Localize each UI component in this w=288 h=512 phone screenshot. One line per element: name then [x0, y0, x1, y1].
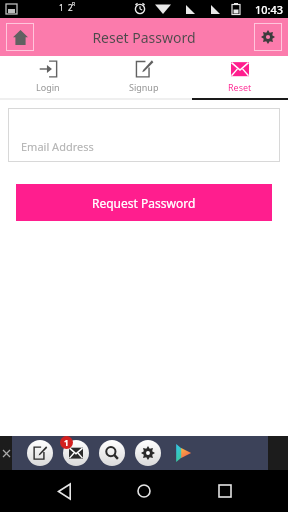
button[interactable]: Mail: [63, 440, 89, 466]
button[interactable]: Settings: [135, 440, 161, 466]
button[interactable]: Compose: [27, 440, 53, 466]
button[interactable]: Signup: [96, 56, 192, 98]
staticText: Signup: [129, 81, 159, 93]
button[interactable]: Home: [6, 23, 34, 51]
staticText: Reset Password: [92, 28, 196, 47]
staticText: 1: [59, 2, 64, 13]
button[interactable]: Request Password: [16, 184, 272, 221]
button[interactable]: Reset: [192, 56, 288, 98]
button[interactable]: Email Address: [8, 108, 280, 162]
staticText: 1: [64, 437, 69, 448]
button[interactable]: Home: [127, 474, 161, 508]
staticText: Login: [36, 81, 60, 93]
staticText: Request Password: [92, 195, 196, 211]
button[interactable]: Back: [47, 474, 81, 508]
button[interactable]: Close ad: [0, 447, 12, 459]
staticText: Email Address: [21, 139, 94, 154]
staticText: R: [72, 1, 76, 8]
button[interactable]: Search: [99, 440, 125, 466]
button[interactable]: Settings: [254, 23, 282, 51]
staticText: Reset: [228, 81, 252, 93]
button[interactable]: Play Store: [171, 441, 195, 465]
staticText: 2: [68, 2, 73, 13]
button[interactable]: Login: [0, 56, 96, 98]
staticText: 10:43: [255, 2, 284, 17]
button[interactable]: Recents: [208, 474, 242, 508]
